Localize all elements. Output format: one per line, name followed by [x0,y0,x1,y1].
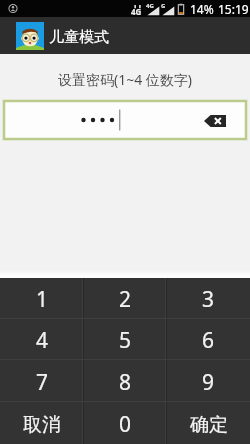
staticText: G [161,2,166,10]
button[interactable]: Backspace [204,115,226,127]
staticText: 7 [36,368,49,397]
staticText: 5 [119,326,132,355]
staticText: 6 [202,326,215,355]
button[interactable]: 5 [84,319,167,360]
button[interactable]: 4 [0,319,84,360]
button[interactable]: 取消 [0,402,84,444]
staticText: 4G [146,2,154,10]
staticText: 8 [119,368,132,397]
button[interactable]: 确定 [167,402,250,444]
staticText: 4G [131,6,142,17]
button[interactable]: 3 [167,278,250,319]
staticText: 9 [202,368,215,397]
staticText: 4 [36,326,49,355]
staticText: 1 [36,285,49,314]
button[interactable]: 8 [84,360,167,402]
button[interactable]: 0 [84,402,167,444]
staticText: 取消 [23,413,61,437]
button[interactable]: 1 [0,278,84,319]
staticText: 3 [202,285,215,314]
staticText: 14% [190,1,214,17]
staticText: 儿童模式 [49,28,109,47]
button[interactable]: 9 [167,360,250,402]
staticText: 15:19 [218,1,249,17]
button[interactable]: 2 [84,278,167,319]
button[interactable]: 6 [167,319,250,360]
staticText: 2 [119,285,132,314]
staticText: 确定 [190,413,228,437]
staticText: 0 [119,410,132,439]
button[interactable]: 7 [0,360,84,402]
staticText: 设置密码(1~4 位数字) [0,70,250,89]
